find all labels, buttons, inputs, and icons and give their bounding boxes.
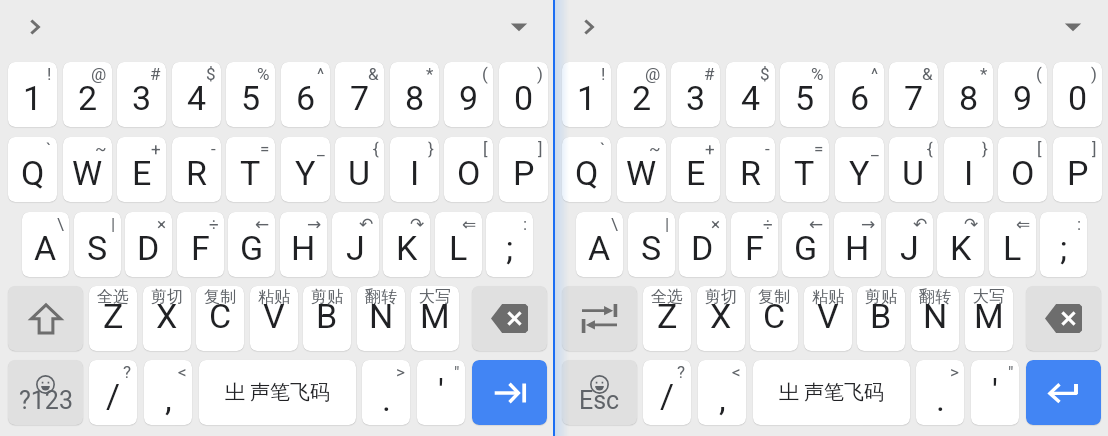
- button[interactable]: ↶: [332, 212, 379, 277]
- button[interactable]: ): [499, 62, 548, 127]
- button[interactable]: <: [144, 360, 192, 425]
- button[interactable]: ←: [228, 212, 275, 277]
- button[interactable]: $: [726, 62, 775, 127]
- button[interactable]: |: [74, 212, 121, 277]
- button[interactable]: (: [998, 62, 1047, 127]
- button[interactable]: 复制: [750, 286, 798, 351]
- button[interactable]: 粘贴: [804, 286, 852, 351]
- button[interactable]: @: [617, 62, 666, 127]
- button[interactable]: *: [944, 62, 993, 127]
- button[interactable]: {: [889, 137, 938, 202]
- button[interactable]: Hide keyboard: [502, 9, 536, 43]
- button[interactable]: #: [117, 62, 166, 127]
- button[interactable]: 大写: [965, 286, 1013, 351]
- button[interactable]: ~: [63, 137, 112, 202]
- button[interactable]: :: [1040, 212, 1087, 277]
- button[interactable]: `: [8, 137, 57, 202]
- button[interactable]: \: [576, 212, 623, 277]
- button[interactable]: 翻转: [357, 286, 405, 351]
- button[interactable]: Backspace: [1026, 286, 1101, 351]
- button[interactable]: !: [8, 62, 57, 127]
- button[interactable]: 剪贴: [857, 286, 905, 351]
- button[interactable]: 粘贴: [250, 286, 298, 351]
- button[interactable]: [: [998, 137, 1047, 202]
- button[interactable]: Shift: [8, 286, 83, 351]
- button[interactable]: 剪切: [143, 286, 191, 351]
- button[interactable]: ⇐: [435, 212, 482, 277]
- button[interactable]: →: [834, 212, 881, 277]
- button[interactable]: 全选: [643, 286, 691, 351]
- button[interactable]: Tab next: [472, 360, 547, 425]
- button[interactable]: 剪贴: [303, 286, 351, 351]
- button[interactable]: Backspace: [472, 286, 547, 351]
- button[interactable]: ": [971, 360, 1019, 425]
- button[interactable]: →: [280, 212, 327, 277]
- button[interactable]: ]: [1053, 137, 1102, 202]
- button[interactable]: ⇐: [989, 212, 1036, 277]
- button[interactable]: Esc: [562, 360, 637, 425]
- button[interactable]: 剪切: [697, 286, 745, 351]
- button[interactable]: \: [22, 212, 69, 277]
- button[interactable]: ÷: [177, 212, 224, 277]
- button[interactable]: +: [117, 137, 166, 202]
- button[interactable]: <: [698, 360, 746, 425]
- button[interactable]: =: [226, 137, 275, 202]
- button[interactable]: ×: [125, 212, 172, 277]
- button[interactable]: {: [335, 137, 384, 202]
- button[interactable]: (: [444, 62, 493, 127]
- staticText: 0: [514, 78, 534, 118]
- button[interactable]: #: [671, 62, 720, 127]
- button[interactable]: `: [562, 137, 611, 202]
- button[interactable]: Expand toolbar: [18, 10, 52, 44]
- button[interactable]: &: [889, 62, 938, 127]
- button[interactable]: ^: [835, 62, 884, 127]
- button[interactable]: &: [335, 62, 384, 127]
- button[interactable]: 复制: [196, 286, 244, 351]
- button[interactable]: ?: [89, 360, 137, 425]
- button[interactable]: [: [444, 137, 493, 202]
- button[interactable]: ]: [499, 137, 548, 202]
- button[interactable]: ×: [679, 212, 726, 277]
- button[interactable]: ": [417, 360, 465, 425]
- button[interactable]: -: [726, 137, 775, 202]
- button[interactable]: :: [486, 212, 533, 277]
- staticText: L: [1003, 228, 1022, 268]
- button[interactable]: ←: [782, 212, 829, 277]
- button[interactable]: >: [362, 360, 410, 425]
- button[interactable]: 㞢 声笔飞码: [199, 360, 356, 425]
- button[interactable]: 翻转: [911, 286, 959, 351]
- staticText: :: [1077, 214, 1082, 234]
- button[interactable]: }: [390, 137, 439, 202]
- button[interactable]: ?: [643, 360, 691, 425]
- button[interactable]: }: [944, 137, 993, 202]
- button[interactable]: -: [172, 137, 221, 202]
- button[interactable]: ^: [281, 62, 330, 127]
- button[interactable]: ↶: [886, 212, 933, 277]
- button[interactable]: $: [172, 62, 221, 127]
- button[interactable]: Hide keyboard: [1056, 9, 1090, 43]
- button[interactable]: _: [281, 137, 330, 202]
- button[interactable]: |: [628, 212, 675, 277]
- button[interactable]: +: [671, 137, 720, 202]
- button[interactable]: ↷: [383, 212, 430, 277]
- button[interactable]: >: [916, 360, 964, 425]
- button[interactable]: _: [835, 137, 884, 202]
- button[interactable]: =: [780, 137, 829, 202]
- button[interactable]: 㞢 声笔飞码: [753, 360, 910, 425]
- button[interactable]: 全选: [89, 286, 137, 351]
- button[interactable]: %: [226, 62, 275, 127]
- button[interactable]: !: [562, 62, 611, 127]
- button[interactable]: @: [63, 62, 112, 127]
- button[interactable]: Expand toolbar: [572, 10, 606, 44]
- button[interactable]: ÷: [731, 212, 778, 277]
- button[interactable]: ~: [617, 137, 666, 202]
- button[interactable]: *: [390, 62, 439, 127]
- button[interactable]: 大写: [411, 286, 459, 351]
- staticText: ~: [95, 139, 107, 159]
- button[interactable]: ?123: [8, 360, 83, 425]
- button[interactable]: %: [780, 62, 829, 127]
- button[interactable]: ): [1053, 62, 1102, 127]
- button[interactable]: Enter: [1026, 360, 1101, 425]
- button[interactable]: ↷: [937, 212, 984, 277]
- button[interactable]: Tab: [562, 286, 637, 351]
